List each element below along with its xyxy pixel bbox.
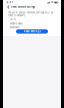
staticText: Wi-Fi (10, 18, 16, 21)
button[interactable]: Reset settings (16, 29, 48, 34)
staticText: Bluetooth (10, 26, 19, 29)
staticText: Reset network settings (11, 5, 35, 8)
staticText: The Wi-Fi and all network settings will … (8, 11, 53, 17)
staticText: Reset settings (23, 30, 40, 33)
staticText: Mobile data (10, 22, 22, 25)
staticText: 9:41 (6, 1, 12, 4)
button[interactable]: Reset network settings (3, 5, 61, 9)
